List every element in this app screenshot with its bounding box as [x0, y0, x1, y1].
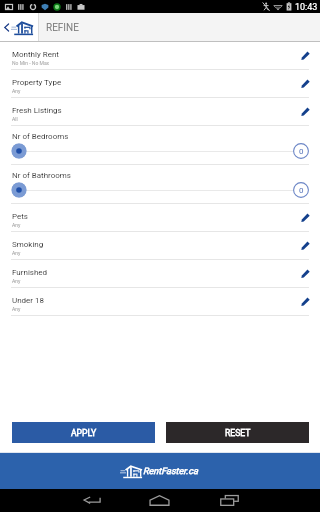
button[interactable]: RESET: [166, 422, 309, 443]
button[interactable]: Property Type: [0, 70, 320, 98]
button[interactable]: Back: [0, 13, 38, 42]
staticText: Nr of Bathrooms: [12, 171, 71, 180]
button[interactable]: Fresh Listings: [0, 98, 320, 126]
button[interactable]: Monthly Rent: [0, 42, 320, 70]
staticText: REFINE: [46, 22, 79, 34]
staticText: Any: [12, 88, 21, 94]
staticText: Any: [12, 222, 21, 228]
staticText: Any: [12, 278, 21, 284]
button[interactable]: Recent apps: [212, 490, 247, 511]
button[interactable]: APPLY: [12, 422, 155, 443]
button[interactable]: Nr of Bedrooms: [11, 143, 27, 159]
button[interactable]: Pets: [0, 204, 320, 232]
staticText: Any: [12, 306, 21, 312]
other: Edit: [300, 50, 311, 61]
button[interactable]: Smoking: [0, 232, 320, 260]
staticText: 0: [299, 186, 304, 195]
staticText: Pets: [12, 212, 28, 221]
other: Edit: [300, 78, 311, 89]
button[interactable]: Furnished: [0, 260, 320, 288]
staticText: APPLY: [71, 428, 97, 438]
staticText: Furnished: [12, 268, 48, 277]
button[interactable]: RentFaster.ca: [120, 464, 198, 479]
staticText: RentFaster.ca: [143, 466, 198, 477]
other: Edit: [300, 268, 311, 279]
button[interactable]: Under 18: [0, 288, 320, 316]
staticText: RESET: [225, 428, 251, 438]
staticText: Smoking: [12, 240, 44, 249]
other: Edit: [300, 296, 311, 307]
button[interactable]: Nr of Bathrooms: [11, 182, 27, 198]
staticText: 10:43: [295, 2, 318, 13]
other: Edit: [300, 106, 311, 117]
staticText: 0: [299, 147, 304, 156]
staticText: Fresh Listings: [12, 106, 62, 115]
staticText: Nr of Bedrooms: [12, 132, 69, 141]
staticText: Any: [12, 250, 21, 256]
other: Edit: [300, 212, 311, 223]
staticText: No Min - No Max: [12, 60, 50, 66]
staticText: Property Type: [12, 78, 62, 87]
button[interactable]: Home: [142, 490, 177, 511]
button[interactable]: Back: [74, 490, 109, 511]
other: Edit: [300, 240, 311, 251]
staticText: All: [12, 116, 18, 122]
staticText: Monthly Rent: [12, 50, 59, 59]
staticText: Under 18: [12, 296, 45, 305]
